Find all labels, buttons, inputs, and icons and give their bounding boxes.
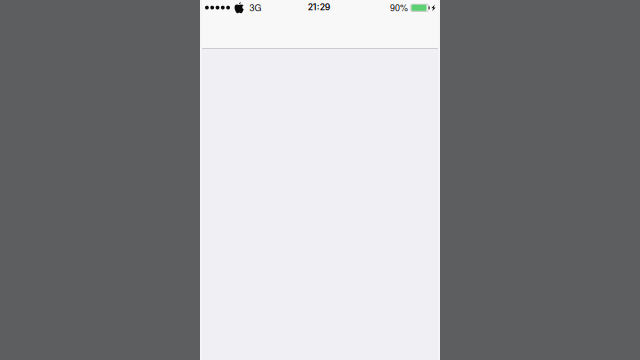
- staticText: 90%: [390, 1, 408, 14]
- staticText: 3G: [250, 1, 262, 14]
- staticText: 21:29: [308, 2, 331, 12]
